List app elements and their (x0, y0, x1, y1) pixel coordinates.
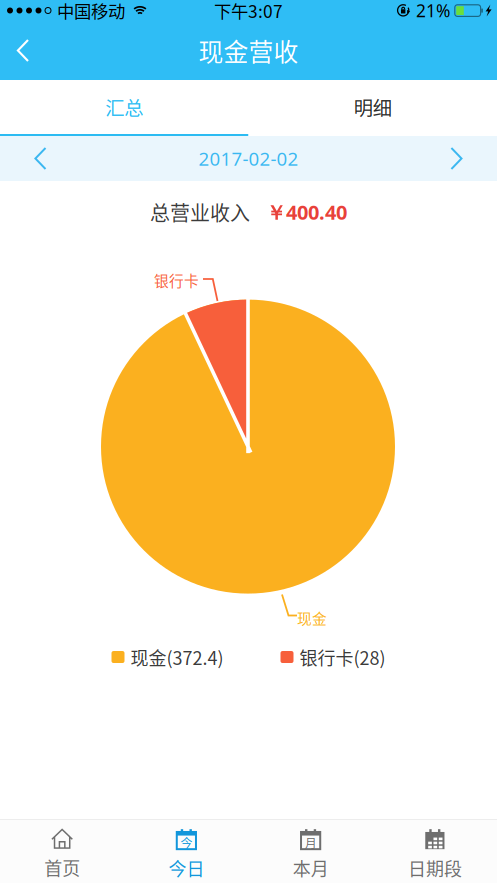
staticText: 中国移动 (57, 0, 125, 23)
button[interactable]: Previous day (0, 136, 81, 181)
staticText: 今 (180, 834, 192, 851)
staticText: 现金(372.4) (130, 644, 223, 670)
staticText: 2017-02-02 (198, 146, 298, 171)
staticText: 银行卡(28) (299, 644, 385, 670)
button[interactable]: 日期段 (373, 826, 497, 883)
staticText: 总营业收入 (150, 197, 250, 226)
staticText: 现金营收 (198, 32, 298, 68)
staticText: 汇总 (105, 93, 143, 121)
staticText: 今日 (168, 855, 204, 881)
staticText: 现金 (297, 607, 327, 629)
staticText: 月 (305, 834, 317, 851)
staticText: ￥400.40 (266, 199, 347, 225)
staticText: 下午3:07 (214, 0, 283, 23)
staticText: 日期段 (408, 855, 462, 881)
button[interactable]: 今 (124, 826, 248, 883)
staticText: 首页 (44, 854, 80, 881)
button[interactable]: 月 (248, 826, 373, 883)
button[interactable]: 明细 (248, 80, 497, 136)
button[interactable]: Next day (416, 136, 497, 181)
staticText: 本月 (293, 855, 329, 881)
button[interactable]: 汇总 (0, 80, 248, 136)
staticText: 21% (416, 0, 450, 22)
staticText: 明细 (354, 93, 392, 121)
button[interactable]: 首页 (0, 826, 124, 883)
staticText: 银行卡 (154, 269, 199, 291)
button[interactable]: Back (1, 28, 45, 72)
